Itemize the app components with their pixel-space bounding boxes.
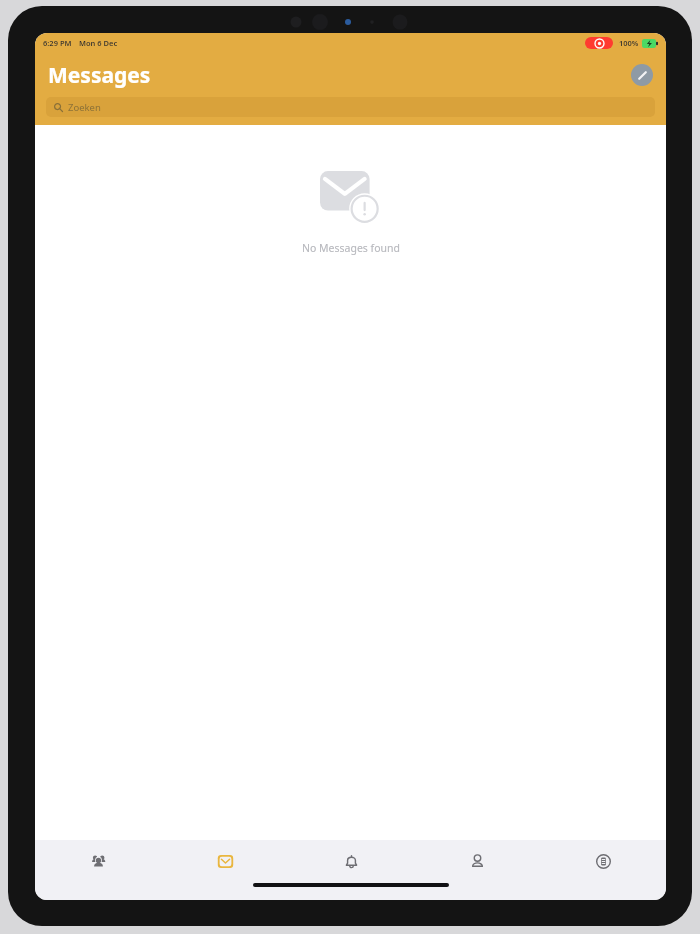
button[interactable]: Profile <box>414 840 540 882</box>
staticText: No Messages found <box>302 241 400 255</box>
staticText: Messages <box>48 61 151 90</box>
button[interactable]: More <box>540 840 666 882</box>
staticText: 6:29 PM <box>43 38 72 48</box>
staticText: Mon 6 Dec <box>79 38 118 48</box>
button[interactable]: Compose message <box>631 64 653 86</box>
staticText: Zoeken <box>68 101 101 114</box>
button[interactable]: Zoeken <box>46 97 655 117</box>
staticText: 100% <box>619 38 639 48</box>
button[interactable]: Notifications <box>288 840 414 882</box>
button[interactable]: Groups <box>35 840 162 882</box>
button[interactable]: Messages <box>162 840 288 882</box>
